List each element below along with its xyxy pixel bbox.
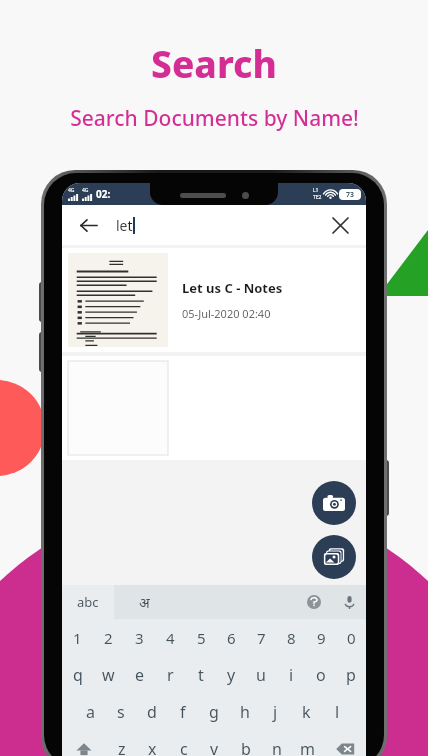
staticText: g xyxy=(209,701,219,723)
button[interactable]: 3 xyxy=(124,619,155,656)
staticText: c xyxy=(180,738,188,756)
staticText: e xyxy=(135,664,145,686)
button[interactable]: abc xyxy=(62,585,114,619)
button[interactable]: अ xyxy=(114,585,174,619)
button[interactable]: i xyxy=(276,656,306,693)
staticText: let xyxy=(116,216,133,235)
staticText: a xyxy=(86,701,95,723)
staticText: 2 xyxy=(104,628,113,648)
staticText: 1 xyxy=(73,628,82,648)
button[interactable]: Let us C - Notes xyxy=(62,248,366,352)
button[interactable]: 4 xyxy=(155,619,186,656)
button[interactable]: Voice input xyxy=(332,585,366,619)
staticText: w xyxy=(102,664,115,686)
button[interactable]: Clear search xyxy=(326,211,354,239)
staticText: o xyxy=(316,664,326,686)
button[interactable]: s xyxy=(105,693,136,730)
staticText: u xyxy=(256,664,266,686)
button[interactable]: Take photo xyxy=(312,481,356,525)
staticText: 4 xyxy=(166,628,175,648)
button[interactable]: q xyxy=(62,656,93,693)
button[interactable]: u xyxy=(246,656,276,693)
button[interactable]: Help xyxy=(296,585,332,619)
staticText: 8 xyxy=(287,628,296,648)
staticText: b xyxy=(241,738,251,756)
staticText: 7 xyxy=(257,628,266,648)
button[interactable]: a xyxy=(75,693,105,730)
staticText: 6 xyxy=(227,628,236,648)
staticText: 9 xyxy=(317,628,326,648)
staticText: l xyxy=(335,701,340,723)
staticText: p xyxy=(346,664,356,686)
button[interactable]: b xyxy=(230,730,261,756)
button[interactable]: h xyxy=(229,693,260,730)
button[interactable]: v xyxy=(199,730,230,756)
button[interactable]: z xyxy=(106,730,137,756)
staticText: v xyxy=(210,738,219,756)
staticText: q xyxy=(73,664,83,686)
button[interactable]: c xyxy=(168,730,199,756)
button[interactable]: f xyxy=(167,693,198,730)
staticText: i xyxy=(289,664,294,686)
staticText: 4G xyxy=(82,187,89,194)
button[interactable]: 1 xyxy=(62,619,93,656)
button[interactable]: 8 xyxy=(276,619,306,656)
button[interactable]: Shift xyxy=(62,730,106,756)
staticText: r xyxy=(167,664,174,686)
staticText: d xyxy=(147,701,157,723)
staticText: x xyxy=(148,738,157,756)
staticText: TE2 xyxy=(313,194,322,201)
button[interactable]: Pick from gallery xyxy=(312,535,356,579)
staticText: Search xyxy=(151,38,277,88)
button[interactable]: e xyxy=(124,656,155,693)
button[interactable]: d xyxy=(136,693,167,730)
staticText: y xyxy=(227,664,236,686)
staticText: Search Documents by Name! xyxy=(70,104,359,133)
staticText: Let us C - Notes xyxy=(182,279,283,297)
button[interactable]: y xyxy=(216,656,246,693)
button[interactable]: 0 xyxy=(336,619,366,656)
staticText: n xyxy=(272,738,282,756)
staticText: h xyxy=(240,701,250,723)
staticText: अ xyxy=(139,593,150,612)
staticText: s xyxy=(117,701,125,723)
button[interactable]: n xyxy=(261,730,292,756)
staticText: 3 xyxy=(135,628,144,648)
staticText: L1 xyxy=(313,187,319,194)
staticText: j xyxy=(273,701,278,723)
button[interactable]: 5 xyxy=(186,619,216,656)
staticText: 05-Jul-2020 02:40 xyxy=(182,306,271,321)
staticText: k xyxy=(302,701,311,723)
staticText: 73 xyxy=(346,190,355,200)
button[interactable]: k xyxy=(291,693,322,730)
staticText: 5 xyxy=(197,628,206,648)
button[interactable]: o xyxy=(306,656,336,693)
button[interactable]: 6 xyxy=(216,619,246,656)
button[interactable]: t xyxy=(186,656,216,693)
staticText: t xyxy=(198,664,204,686)
button[interactable]: j xyxy=(260,693,291,730)
button[interactable]: 7 xyxy=(246,619,276,656)
button[interactable]: let xyxy=(116,216,326,235)
staticText: 02: xyxy=(96,187,111,201)
button[interactable]: m xyxy=(292,730,323,756)
staticText: 4G xyxy=(68,187,75,194)
button[interactable]: l xyxy=(322,693,353,730)
button[interactable]: 2 xyxy=(93,619,124,656)
button[interactable]: Back xyxy=(74,211,102,239)
button[interactable]: x xyxy=(137,730,168,756)
button[interactable]: 9 xyxy=(306,619,336,656)
staticText: z xyxy=(118,738,126,756)
staticText: abc xyxy=(77,593,99,611)
staticText: m xyxy=(300,738,315,756)
button[interactable]: p xyxy=(336,656,366,693)
staticText: f xyxy=(180,701,186,723)
button[interactable]: w xyxy=(93,656,124,693)
staticText: 0 xyxy=(347,628,356,648)
button[interactable]: g xyxy=(198,693,229,730)
button[interactable]: r xyxy=(155,656,186,693)
button[interactable]: Backspace xyxy=(323,730,366,756)
